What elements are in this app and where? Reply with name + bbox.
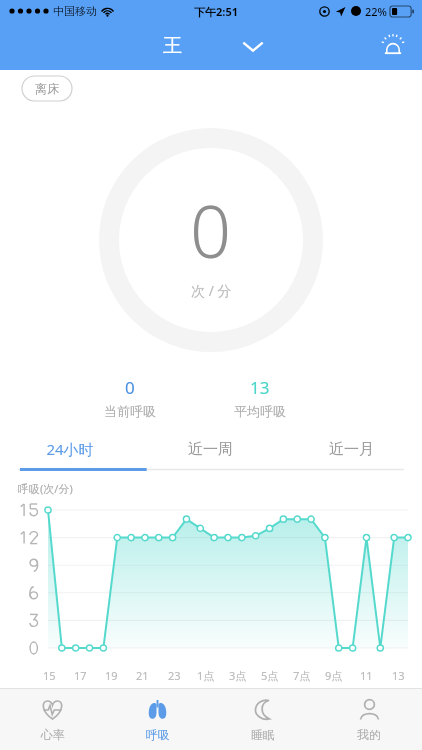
button[interactable]: 王: [153, 28, 192, 64]
staticText: 王: [163, 34, 182, 58]
button[interactable]: 心率: [0, 689, 105, 750]
button[interactable]: 呼吸: [105, 689, 210, 750]
staticText: 平均呼吸: [234, 403, 286, 419]
staticText: 呼吸: [146, 727, 170, 742]
staticText: 9点: [325, 668, 343, 683]
staticText: 睡眠: [251, 727, 275, 742]
staticText: 24小时: [46, 439, 94, 459]
button[interactable]: 离床: [22, 76, 72, 101]
button[interactable]: Alarm: [374, 27, 412, 65]
staticText: 0: [125, 376, 135, 399]
staticText: 下午2:51: [194, 4, 238, 19]
button[interactable]: 0: [70, 376, 190, 419]
staticText: 近一月: [329, 440, 374, 459]
staticText: 21: [136, 668, 149, 683]
button[interactable]: 13: [200, 376, 320, 419]
button[interactable]: 睡眠: [210, 689, 316, 750]
staticText: 次 / 分: [191, 281, 232, 300]
staticText: 近一周: [188, 440, 233, 459]
staticText: 5点: [261, 668, 279, 683]
staticText: 我的: [357, 727, 381, 742]
button[interactable]: 我的: [316, 689, 422, 750]
staticText: 13: [392, 668, 405, 683]
staticText: 心率: [41, 727, 65, 742]
staticText: 7点: [293, 668, 311, 683]
staticText: 呼吸(次/分): [18, 481, 73, 496]
button[interactable]: 近一月: [281, 435, 422, 471]
staticText: 23: [168, 668, 181, 683]
staticText: 中国移动: [53, 4, 97, 18]
staticText: 当前呼吸: [104, 403, 156, 419]
staticText: 17: [74, 668, 87, 683]
staticText: 0: [190, 181, 232, 279]
button[interactable]: 近一周: [140, 435, 281, 471]
staticText: 19: [105, 668, 118, 683]
staticText: 15: [43, 668, 56, 683]
staticText: 11: [360, 668, 373, 683]
button[interactable]: 24小时: [0, 435, 140, 471]
button[interactable]: Expand: [236, 29, 270, 63]
staticText: 13: [250, 376, 270, 399]
staticText: 1点: [197, 668, 215, 683]
staticText: 3点: [229, 668, 247, 683]
staticText: 22%: [365, 4, 387, 19]
staticText: 离床: [35, 81, 59, 96]
